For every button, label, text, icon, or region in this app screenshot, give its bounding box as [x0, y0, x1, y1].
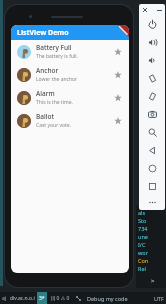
button[interactable]: div.ac.n.o.i	[10, 295, 35, 302]
staticText: Battery Full	[36, 43, 72, 52]
staticText: Debug my code	[87, 295, 128, 302]
staticText: (i) 0 ⚠ 0	[51, 295, 70, 302]
button[interactable]: Ballot	[11, 109, 129, 132]
staticText: The battery is full.	[36, 53, 78, 60]
staticText: div.ac.n.o.i	[10, 295, 35, 302]
button[interactable]: Overview	[139, 177, 165, 195]
staticText: I/C	[138, 241, 146, 248]
staticText: ListView Demo	[17, 28, 69, 38]
button[interactable]: Battery Full	[11, 40, 129, 63]
staticText: Ballot	[36, 112, 54, 121]
staticText: 3*	[39, 295, 45, 302]
staticText: This is the time.	[36, 99, 73, 106]
staticText: aj	[2, 295, 7, 302]
button[interactable]: Home	[139, 159, 165, 177]
staticText: une	[138, 233, 148, 240]
button[interactable]: Power	[139, 15, 165, 33]
button[interactable]: Take screenshot	[139, 105, 165, 123]
button[interactable]: Close	[140, 5, 150, 15]
button[interactable]: Branch	[75, 295, 82, 302]
button[interactable]: Alarm	[11, 86, 129, 109]
staticText: Lower the anchor	[36, 76, 78, 83]
button[interactable]: Rotate right	[139, 87, 165, 105]
button[interactable]: 3*	[39, 292, 45, 304]
button[interactable]: Favorite Ballot	[112, 115, 124, 127]
staticText: Sto	[138, 217, 147, 224]
button[interactable]: Favorite Battery Full	[112, 46, 124, 58]
button[interactable]: Favorite Anchor	[112, 69, 124, 81]
staticText: >	[151, 277, 155, 285]
button[interactable]: Volume down	[139, 51, 165, 69]
staticText: Alarm	[36, 89, 55, 98]
button[interactable]: Zoom	[139, 123, 165, 141]
staticText: Con	[138, 257, 149, 264]
staticText: wor	[138, 249, 148, 256]
staticText: Cast your vote.	[36, 122, 72, 129]
button[interactable]: Minimize	[154, 5, 164, 15]
button[interactable]: Anchor	[11, 63, 129, 86]
button[interactable]: Back	[139, 141, 165, 159]
button[interactable]: Favorite Alarm	[112, 92, 124, 104]
button[interactable]: Rotate left	[139, 69, 165, 87]
staticText: 734	[138, 225, 148, 232]
button[interactable]: Debug my code	[87, 295, 128, 302]
button[interactable]: Run	[148, 276, 158, 286]
staticText: UTF	[154, 295, 164, 302]
staticText: Anchor	[36, 66, 59, 75]
button[interactable]: Volume up	[139, 33, 165, 51]
staticText: als	[138, 209, 146, 216]
staticText: Rel	[138, 265, 146, 272]
button[interactable]: More	[139, 195, 165, 210]
